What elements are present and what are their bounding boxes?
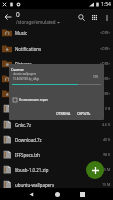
staticText: Download.7z — [15, 137, 103, 143]
button[interactable]: Music — [0, 25, 113, 40]
staticText: 1.5 M — [101, 167, 111, 172]
staticText: Notifications — [15, 46, 100, 52]
staticText: 0 — [16, 10, 20, 19]
staticText: ubuntu-wallpapers — [15, 182, 102, 188]
button[interactable]: Pictures — [0, 56, 113, 71]
staticText: <DIR> — [100, 61, 111, 66]
button[interactable]: More options — [101, 12, 112, 23]
staticText: 0 B — [105, 106, 111, 111]
button[interactable]: 0.txt — [0, 101, 113, 116]
staticText: <DIR> — [100, 30, 111, 35]
button[interactable]: Ringtones — [0, 86, 113, 101]
staticText: IFFSpecs.lzh — [15, 152, 103, 158]
staticText: Music — [15, 30, 100, 36]
staticText: 40 K — [103, 137, 111, 142]
button[interactable]: Notifications — [0, 41, 113, 56]
staticText: 15 M — [102, 182, 111, 187]
staticText: 15.84 M/183.by_s4kjp — [13, 77, 40, 81]
button[interactable]: Grid view — [88, 11, 101, 24]
button[interactable]: libusb-1.0.21.zip — [0, 162, 113, 177]
staticText: Podcasts — [15, 76, 100, 82]
staticText: libusb-1.0.21.zip — [15, 167, 101, 173]
button[interactable]: Recents — [76, 188, 88, 200]
button[interactable]: Back — [25, 188, 37, 200]
staticText: СКРЫТЬ — [77, 111, 91, 116]
staticText: ubuntu-wallpapers — [13, 72, 37, 76]
button[interactable]: Не выключать экран — [13, 98, 48, 102]
button[interactable]: Gnkc.7z — [0, 117, 113, 132]
staticText: /storage/emulated — [16, 19, 56, 25]
button[interactable]: Download.7z — [0, 132, 113, 147]
button[interactable]: Podcasts — [0, 71, 113, 86]
staticText: <DIR> — [100, 76, 111, 81]
button[interactable]: ubuntu-wallpapers — [0, 177, 113, 192]
staticText: ОТМЕНА — [56, 111, 71, 116]
button[interactable]: Add — [86, 161, 104, 179]
staticText: Не выключать экран — [19, 98, 48, 102]
staticText: 4.6 K — [102, 122, 111, 127]
staticText: 0.txt — [15, 106, 105, 112]
button[interactable]: Search — [75, 11, 88, 24]
staticText: <DIR> — [100, 91, 111, 96]
staticText: Сжатие — [11, 67, 24, 72]
button[interactable]: ОТМЕНА — [53, 109, 74, 118]
staticText: Gnkc.7z — [15, 122, 102, 128]
staticText: <DIR> — [100, 46, 111, 51]
staticText: 1:54 — [101, 1, 111, 8]
button[interactable]: IFFSpecs.lzh — [0, 147, 113, 162]
button[interactable]: СКРЫТЬ — [74, 109, 94, 118]
button[interactable]: Back — [0, 9, 16, 25]
button[interactable]: Home — [51, 188, 63, 200]
staticText: 98 K — [103, 152, 111, 157]
staticText: 73% — [93, 75, 99, 79]
staticText: Pictures — [15, 61, 100, 67]
